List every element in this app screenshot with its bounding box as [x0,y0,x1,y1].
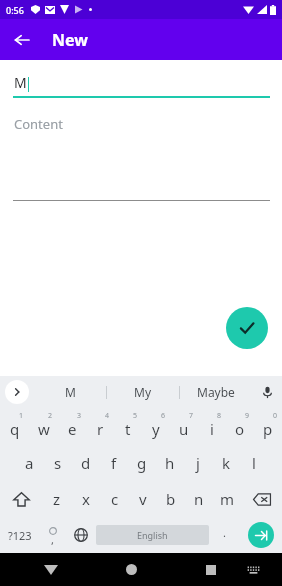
button[interactable]: Back [8,26,36,54]
staticText: f [111,453,117,473]
button[interactable]: n [185,481,213,517]
button[interactable]: Switch keyboard [239,556,267,584]
button[interactable]: Maybe [180,376,252,408]
staticText: 0 [273,411,278,421]
button[interactable]: c [100,481,129,517]
staticText: 5 [133,411,138,421]
button[interactable]: Save note [226,307,268,349]
button[interactable]: j [184,445,212,481]
button[interactable]: a [15,445,44,481]
button[interactable]: y [142,408,170,445]
staticText: s [54,453,62,473]
staticText: p [263,419,273,439]
staticText: 9 [245,411,250,421]
staticText: M [14,73,27,92]
staticText: c [111,489,119,509]
button[interactable]: ?123 [0,517,39,553]
button[interactable]: Enter [239,517,282,553]
staticText: b [166,489,176,509]
button[interactable]: More suggestions [0,376,34,408]
button[interactable]: k [212,445,240,481]
staticText: h [165,453,175,473]
button[interactable]: g [128,445,156,481]
button[interactable]: Back [34,553,68,586]
staticText: r [97,419,104,439]
staticText: ?123 [8,528,32,543]
button[interactable]: l [240,445,268,481]
button[interactable]: i [198,408,226,445]
button[interactable]: w [29,408,58,445]
button[interactable]: e [58,408,86,445]
staticText: Content [14,115,63,133]
staticText: q [10,419,20,439]
staticText: m [220,489,235,509]
staticText: 8 [217,411,222,421]
button[interactable]: r [86,408,114,445]
staticText: M [65,384,76,400]
staticText: My [134,384,152,400]
button[interactable]: m [213,481,241,517]
button[interactable]: Content [0,115,282,201]
staticText: o [235,419,245,439]
button[interactable]: M [34,376,106,408]
button[interactable]: . [209,517,239,553]
button[interactable]: Shift [0,481,42,517]
staticText: d [81,453,91,473]
button[interactable]: Emoji [39,517,66,553]
staticText: t [125,419,131,439]
staticText: k [222,453,231,473]
staticText: y [152,419,160,439]
button[interactable]: English [96,525,209,545]
staticText: z [53,489,61,509]
button[interactable]: q [0,408,29,445]
staticText: New [52,29,88,51]
staticText: 3 [77,411,82,421]
staticText: English [137,529,168,541]
staticText: g [137,453,147,473]
staticText: a [25,453,34,473]
staticText: i [210,419,214,439]
staticText: w [38,419,50,439]
staticText: 7 [189,411,194,421]
button[interactable]: d [72,445,100,481]
staticText: u [179,419,189,439]
button[interactable]: M [0,73,282,98]
button[interactable]: My [107,376,179,408]
button[interactable]: Backspace [241,481,282,517]
staticText: , [51,532,54,547]
button[interactable]: Home [114,553,148,586]
staticText: Maybe [197,384,235,400]
button[interactable]: u [170,408,198,445]
staticText: v [139,489,147,509]
staticText: 4 [105,411,110,421]
button[interactable]: x [71,481,100,517]
button[interactable]: o [226,408,254,445]
button[interactable]: Recents [194,553,228,586]
staticText: e [68,419,77,439]
staticText: x [82,489,90,509]
button[interactable]: Voice input [252,376,282,408]
button[interactable]: t [114,408,142,445]
button[interactable]: s [44,445,72,481]
staticText: n [194,489,204,509]
staticText: 2 [48,411,53,421]
button[interactable]: v [129,481,157,517]
staticText: 6 [161,411,166,421]
staticText: 1 [19,411,24,421]
button[interactable]: Change language [66,517,96,553]
button[interactable]: b [157,481,185,517]
staticText: 0:56 [6,4,24,16]
button[interactable]: z [42,481,71,517]
staticText: j [196,453,200,473]
button[interactable]: p [254,408,282,445]
staticText: l [252,453,256,473]
button[interactable]: h [156,445,184,481]
button[interactable]: f [100,445,128,481]
staticText: . [223,525,226,540]
